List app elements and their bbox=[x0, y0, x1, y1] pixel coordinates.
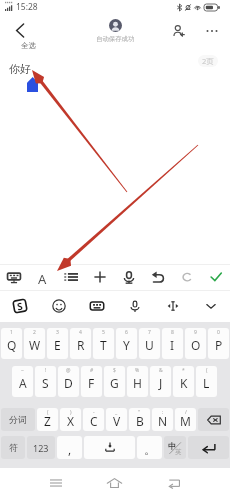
button[interactable]: " bbox=[129, 408, 150, 431]
button[interactable]: Keyboard bbox=[0, 264, 28, 290]
button[interactable]: _ bbox=[106, 408, 127, 431]
button[interactable]: 分词 bbox=[1, 408, 35, 431]
staticText: 2页 bbox=[202, 56, 214, 66]
button[interactable]: 7 bbox=[139, 328, 160, 359]
staticText: S bbox=[16, 299, 24, 313]
button[interactable]: 3 bbox=[47, 328, 68, 359]
staticText: 6 bbox=[125, 329, 128, 336]
staticText: 0 bbox=[217, 329, 220, 336]
button[interactable]: 9 bbox=[185, 328, 206, 359]
button[interactable]: Back bbox=[8, 19, 31, 42]
staticText: 123 bbox=[33, 442, 49, 454]
staticText: C bbox=[90, 413, 98, 429]
button[interactable]: Emoji bbox=[39, 290, 78, 322]
staticText: 英 bbox=[175, 448, 182, 456]
button[interactable]: Sogou bbox=[0, 290, 39, 322]
staticText: # bbox=[90, 367, 94, 374]
staticText: _ bbox=[115, 409, 118, 416]
button[interactable]: * bbox=[173, 366, 194, 397]
button[interactable]: 6 bbox=[116, 328, 137, 359]
button[interactable]: 全选 bbox=[21, 41, 36, 50]
button[interactable]: @ bbox=[58, 366, 79, 397]
button[interactable]: Keyboard layout bbox=[78, 290, 116, 322]
button[interactable]: Home bbox=[102, 471, 126, 495]
button[interactable]: 5 bbox=[93, 328, 114, 359]
staticText: Q bbox=[7, 337, 17, 353]
staticText: 。 bbox=[144, 442, 156, 457]
button[interactable]: ~ bbox=[12, 366, 33, 397]
button[interactable]: $ bbox=[104, 366, 125, 397]
button[interactable]: Undo bbox=[143, 264, 172, 290]
button[interactable]: / bbox=[175, 408, 196, 431]
button[interactable]: 符 bbox=[1, 436, 25, 459]
button[interactable]: 2 bbox=[24, 328, 45, 359]
button[interactable]: 123 bbox=[27, 436, 55, 459]
button[interactable]: Enter bbox=[188, 436, 229, 459]
staticText: 分词 bbox=[9, 414, 27, 425]
button[interactable]: Recent apps bbox=[44, 471, 68, 495]
staticText: : bbox=[162, 409, 164, 416]
button[interactable]: 2页 bbox=[202, 56, 214, 66]
button[interactable]: 1 bbox=[1, 328, 22, 359]
staticText: , bbox=[68, 441, 72, 457]
staticText: 2 bbox=[33, 329, 36, 336]
staticText: M bbox=[180, 413, 191, 429]
button[interactable]: Done bbox=[201, 264, 230, 290]
staticText: @ bbox=[66, 367, 71, 374]
staticText: 3 bbox=[56, 329, 59, 336]
button[interactable]: ( bbox=[37, 408, 58, 431]
button[interactable]: % bbox=[127, 366, 148, 397]
staticText: 你好 bbox=[9, 62, 31, 76]
staticText: Z bbox=[44, 413, 51, 429]
button[interactable]: ( bbox=[196, 366, 217, 397]
button[interactable]: Cursor bbox=[154, 290, 192, 322]
staticText: K bbox=[180, 375, 188, 391]
staticText: ( bbox=[206, 367, 208, 374]
staticText: A bbox=[19, 375, 27, 391]
button[interactable]: : bbox=[152, 408, 173, 431]
staticText: 5 bbox=[102, 329, 105, 336]
staticText: ~ bbox=[21, 367, 24, 374]
staticText: R bbox=[77, 337, 85, 353]
button[interactable]: Backspace bbox=[198, 408, 229, 431]
button[interactable]: ! bbox=[35, 366, 56, 397]
staticText: D bbox=[64, 375, 73, 391]
staticText: X bbox=[67, 413, 75, 429]
button[interactable]: 。 bbox=[137, 436, 162, 459]
button[interactable]: 8 bbox=[162, 328, 183, 359]
staticText: E bbox=[54, 337, 61, 353]
staticText: 1 bbox=[10, 329, 13, 336]
button[interactable]: 4 bbox=[70, 328, 91, 359]
button[interactable]: Back bbox=[162, 471, 186, 495]
button[interactable]: - bbox=[83, 408, 104, 431]
button[interactable]: # bbox=[81, 366, 102, 397]
button[interactable]: Hide keyboard bbox=[192, 290, 230, 322]
button[interactable]: List bbox=[56, 264, 85, 290]
button[interactable]: 0 bbox=[208, 328, 229, 359]
staticText: Y bbox=[123, 337, 130, 353]
button[interactable]: More options bbox=[200, 19, 223, 42]
button[interactable]: Voice input bbox=[116, 290, 154, 322]
button[interactable]: Chinese English toggle bbox=[164, 436, 186, 459]
staticText: W bbox=[29, 337, 41, 353]
button[interactable]: Voice bbox=[114, 264, 143, 290]
staticText: S bbox=[42, 375, 49, 391]
staticText: T bbox=[100, 337, 107, 353]
staticText: U bbox=[145, 337, 154, 353]
staticText: & bbox=[159, 367, 163, 374]
staticText: / bbox=[185, 409, 187, 416]
button[interactable]: Font bbox=[28, 264, 56, 290]
button[interactable]: Add people bbox=[167, 19, 190, 42]
button[interactable]: & bbox=[150, 366, 171, 397]
staticText: F bbox=[88, 375, 95, 391]
button[interactable]: ) bbox=[60, 408, 81, 431]
staticText: O bbox=[191, 337, 201, 353]
button[interactable]: Insert bbox=[85, 264, 114, 290]
button[interactable]: Redo bbox=[172, 264, 201, 290]
staticText: 符 bbox=[9, 442, 18, 453]
button[interactable]: , bbox=[57, 436, 82, 459]
button[interactable]: Space bbox=[84, 436, 135, 459]
staticText: - bbox=[93, 409, 95, 416]
staticText: $ bbox=[113, 367, 116, 374]
staticText: J bbox=[159, 375, 163, 391]
